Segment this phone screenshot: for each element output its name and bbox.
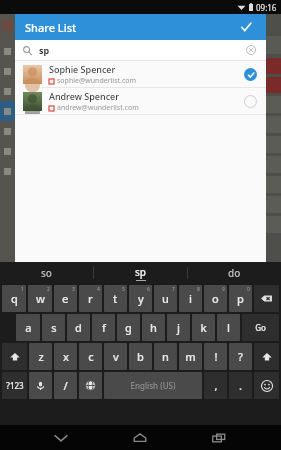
staticText: ? bbox=[238, 349, 243, 364]
staticText: Andrew Spencer bbox=[49, 90, 120, 102]
button[interactable]: mic bbox=[29, 372, 52, 399]
button[interactable]: 8 bbox=[179, 285, 202, 312]
staticText: m bbox=[185, 349, 196, 364]
button[interactable]: Recents bbox=[202, 425, 236, 450]
staticText: r bbox=[88, 291, 93, 306]
staticText: i bbox=[189, 291, 192, 306]
button[interactable]: j bbox=[167, 314, 190, 341]
button[interactable]: 0 bbox=[229, 285, 252, 312]
button[interactable]: b bbox=[129, 343, 152, 370]
staticText: b bbox=[137, 349, 144, 364]
button[interactable]: h bbox=[142, 314, 165, 341]
staticText: Go bbox=[255, 322, 266, 333]
staticText: 4 bbox=[97, 286, 100, 293]
staticText: ?123 bbox=[6, 380, 24, 391]
staticText: p bbox=[237, 291, 244, 306]
staticText: e bbox=[62, 291, 69, 306]
button[interactable]: ? bbox=[229, 343, 252, 370]
button[interactable]: 1 bbox=[2, 285, 26, 312]
button[interactable]: g bbox=[117, 314, 140, 341]
button[interactable]: k bbox=[192, 314, 215, 341]
staticText: , bbox=[214, 378, 218, 393]
button[interactable]: , bbox=[204, 372, 227, 399]
staticText: 09:16 bbox=[256, 2, 277, 13]
button[interactable]: shift bbox=[2, 343, 27, 370]
staticText: q bbox=[11, 291, 18, 306]
staticText: t bbox=[113, 291, 118, 306]
button[interactable]: 7 bbox=[154, 285, 177, 312]
staticText: andrew@wunderlist.com bbox=[57, 103, 139, 113]
button[interactable]: l bbox=[217, 314, 240, 341]
staticText: Sophie Spencer bbox=[49, 63, 116, 75]
button[interactable]: ?123 bbox=[2, 372, 27, 399]
button[interactable]: 5 bbox=[104, 285, 127, 312]
staticText: u bbox=[162, 291, 169, 306]
staticText: d bbox=[75, 320, 82, 335]
button[interactable]: 6 bbox=[129, 285, 152, 312]
staticText: sophie@wunderlist.com bbox=[57, 76, 137, 86]
button[interactable]: Andrew Spencer bbox=[15, 88, 266, 114]
button[interactable]: 9 bbox=[204, 285, 227, 312]
staticText: 9 bbox=[222, 286, 225, 293]
staticText: 7 bbox=[172, 286, 175, 293]
staticText: English (US) bbox=[130, 380, 176, 391]
button[interactable]: c bbox=[79, 343, 102, 370]
staticText: x bbox=[63, 349, 69, 364]
staticText: ! bbox=[214, 349, 218, 364]
button[interactable]: a bbox=[16, 314, 40, 341]
button[interactable]: n bbox=[154, 343, 177, 370]
button[interactable]: z bbox=[29, 343, 52, 370]
button[interactable]: x bbox=[54, 343, 77, 370]
staticText: y bbox=[138, 291, 144, 306]
button[interactable]: shift bbox=[254, 343, 279, 370]
button[interactable]: . bbox=[229, 372, 252, 399]
button[interactable]: 3 bbox=[54, 285, 77, 312]
button[interactable]: sp bbox=[94, 262, 187, 284]
staticText: l bbox=[227, 320, 230, 335]
staticText: c bbox=[88, 349, 94, 364]
staticText: 1 bbox=[21, 286, 24, 293]
button[interactable]: so bbox=[0, 262, 93, 284]
staticText: . bbox=[239, 378, 242, 393]
button[interactable]: Home bbox=[123, 425, 157, 450]
staticText: h bbox=[150, 320, 157, 335]
button[interactable]: sp bbox=[15, 40, 266, 60]
button[interactable]: f bbox=[92, 314, 115, 341]
button[interactable]: Share List bbox=[15, 14, 266, 40]
staticText: a bbox=[25, 320, 32, 335]
button[interactable]: do bbox=[188, 262, 281, 284]
button[interactable]: 2 bbox=[28, 285, 52, 312]
button[interactable]: emoji bbox=[254, 372, 279, 399]
staticText: f bbox=[102, 320, 106, 335]
staticText: 5 bbox=[122, 286, 125, 293]
button[interactable]: globe bbox=[79, 372, 102, 399]
button[interactable]: 4 bbox=[79, 285, 102, 312]
staticText: k bbox=[200, 320, 207, 335]
staticText: w bbox=[36, 291, 45, 306]
button[interactable]: Sophie Spencer bbox=[15, 61, 266, 87]
button[interactable]: Confirm bbox=[236, 17, 256, 37]
button[interactable]: Back bbox=[44, 425, 78, 450]
staticText: 0 bbox=[247, 286, 250, 293]
staticText: 6 bbox=[147, 286, 150, 293]
button[interactable]: s bbox=[42, 314, 65, 341]
staticText: n bbox=[162, 349, 169, 364]
button[interactable]: del bbox=[254, 285, 279, 312]
staticText: 8 bbox=[197, 286, 200, 293]
staticText: s bbox=[51, 320, 57, 335]
button[interactable]: d bbox=[67, 314, 90, 341]
staticText: / bbox=[63, 378, 68, 393]
staticText: Share List bbox=[25, 20, 77, 35]
button[interactable]: ! bbox=[204, 343, 227, 370]
button[interactable]: English (US) bbox=[104, 372, 202, 399]
button[interactable]: m bbox=[179, 343, 202, 370]
staticText: do bbox=[228, 266, 241, 280]
button[interactable]: v bbox=[104, 343, 127, 370]
staticText: 3 bbox=[72, 286, 75, 293]
staticText: so bbox=[41, 266, 52, 280]
button[interactable]: / bbox=[54, 372, 77, 399]
staticText: o bbox=[212, 291, 219, 306]
button[interactable]: Go bbox=[242, 314, 279, 341]
staticText: j bbox=[177, 320, 180, 335]
button[interactable]: Clear bbox=[244, 43, 258, 57]
